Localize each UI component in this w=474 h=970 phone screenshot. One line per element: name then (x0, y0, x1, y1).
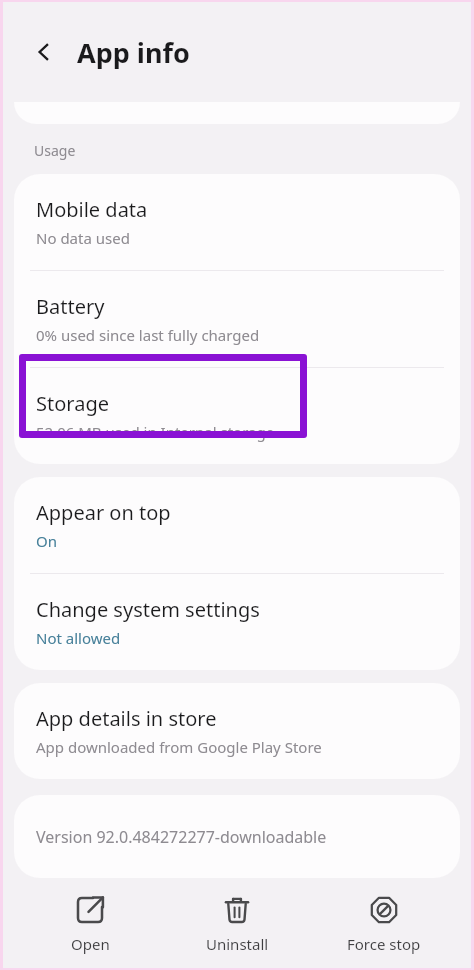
button[interactable]: Open (30, 889, 150, 960)
staticText: No data used (36, 228, 130, 248)
button[interactable]: Appear on top (14, 477, 460, 573)
staticText: App info (77, 34, 190, 71)
staticText: Battery (36, 293, 105, 320)
staticText: App downloaded from Google Play Store (36, 737, 322, 757)
staticText: Version 92.0.484272277-downloadable (36, 826, 327, 848)
staticText: App details in store (36, 705, 217, 732)
button[interactable]: Storage (14, 368, 460, 464)
staticText: Open (71, 934, 110, 954)
staticText: Force stop (347, 934, 421, 954)
staticText: Mobile data (36, 196, 148, 223)
staticText: Not allowed (36, 628, 121, 648)
staticText: On (36, 531, 57, 551)
button[interactable]: App details in store (14, 683, 460, 779)
staticText: Storage (36, 390, 109, 417)
staticText: Change system settings (36, 596, 260, 623)
button[interactable]: Force stop (324, 889, 444, 960)
staticText: 0% used since last fully charged (36, 325, 260, 345)
button[interactable]: Change system settings (14, 574, 460, 670)
button[interactable]: Mobile data (14, 174, 460, 270)
staticText: Usage (34, 141, 76, 160)
staticText: Uninstall (206, 934, 269, 954)
button[interactable]: Uninstall (177, 889, 297, 960)
staticText: Appear on top (36, 499, 171, 526)
button[interactable]: Back (23, 31, 65, 73)
button[interactable]: Battery (14, 271, 460, 367)
staticText: 52.06 MB used in Internal storage (36, 422, 275, 442)
